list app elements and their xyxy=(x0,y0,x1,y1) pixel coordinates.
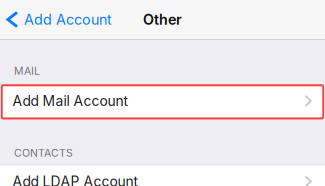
button[interactable]: Add LDAP Account xyxy=(0,164,325,186)
button[interactable]: Back to Add Account xyxy=(0,0,122,38)
staticText: MAIL xyxy=(14,65,40,77)
button[interactable]: Add Mail Account xyxy=(0,84,325,117)
staticText: Add Account xyxy=(24,11,112,28)
staticText: Add Mail Account xyxy=(13,93,129,109)
staticText: CONTACTS xyxy=(14,147,73,159)
staticText: Other xyxy=(143,11,182,28)
staticText: Add LDAP Account xyxy=(13,173,139,186)
